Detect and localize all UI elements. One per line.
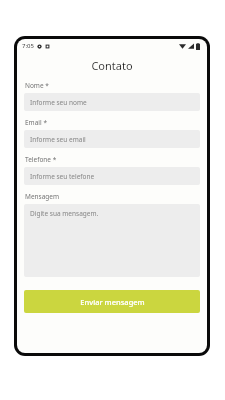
staticText: Informe seu telefone (30, 172, 95, 180)
staticText: Digite sua mensagem. (30, 209, 99, 218)
staticText: Email * (25, 118, 47, 127)
button[interactable]: Informe seu nome (24, 93, 200, 111)
button[interactable]: Informe seu telefone (24, 167, 200, 185)
staticText: Informe seu nome (30, 98, 87, 106)
staticText: Nome * (25, 81, 49, 90)
staticText: Contato (91, 58, 133, 73)
staticText: Mensagem (25, 192, 60, 201)
button[interactable]: Enviar mensagem (24, 290, 200, 313)
button[interactable]: Digite sua mensagem. (24, 204, 200, 277)
staticText: Informe seu email (30, 135, 86, 143)
button[interactable]: Informe seu email (24, 130, 200, 148)
staticText: 7:05 (22, 42, 34, 50)
staticText: Telefone * (25, 155, 57, 164)
staticText: Enviar mensagem (80, 297, 145, 307)
